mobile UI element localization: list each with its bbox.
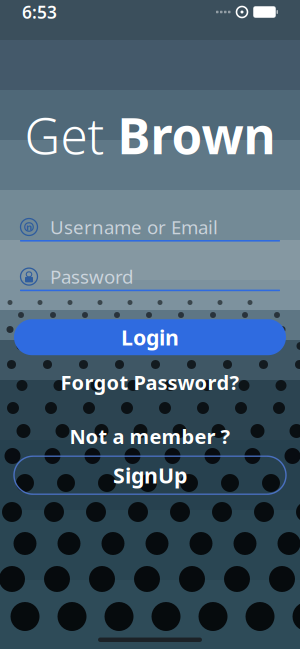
staticText: n [26, 221, 32, 233]
staticText: SignUp [113, 461, 187, 489]
staticText: Get [24, 102, 117, 168]
staticText: Username or Email [50, 215, 218, 239]
staticText: Brown [117, 102, 275, 168]
staticText: Login [121, 323, 179, 351]
staticText: Not a member ? [69, 423, 230, 449]
staticText: 6:53 [22, 0, 57, 23]
button[interactable]: Login [14, 319, 286, 355]
staticText: Forgot Password? [60, 369, 239, 395]
button[interactable]: Forgot Password? [14, 371, 286, 393]
button[interactable]: SignUp [14, 456, 286, 494]
staticText: Password [50, 264, 133, 289]
